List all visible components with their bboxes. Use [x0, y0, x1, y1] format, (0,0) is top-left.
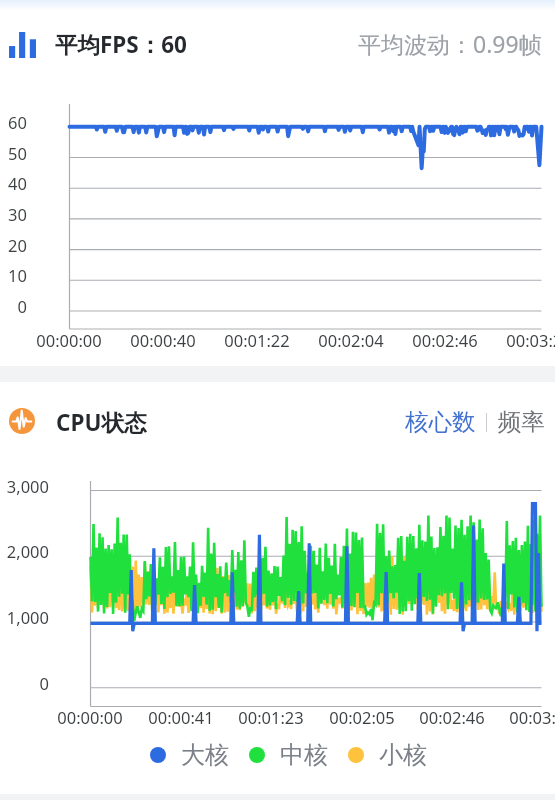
- staticText: 40: [0, 172, 27, 194]
- staticText: 00:03:28: [487, 706, 555, 728]
- staticText: 20: [0, 234, 27, 256]
- staticText: 核心数: [405, 407, 476, 437]
- staticText: 00:00:00: [35, 706, 145, 728]
- button[interactable]: 频率: [487, 401, 546, 443]
- staticText: 2,000: [0, 540, 49, 562]
- staticText: 10: [0, 264, 27, 286]
- staticText: 0: [0, 295, 27, 317]
- staticText: 平均FPS：60: [55, 29, 187, 60]
- staticText: 60: [0, 111, 27, 133]
- staticText: 大核: [181, 740, 229, 770]
- staticText: 00:01:22: [202, 329, 312, 351]
- button[interactable]: 大核: [150, 740, 229, 770]
- staticText: 00:02:46: [397, 706, 507, 728]
- staticText: 中核: [280, 740, 328, 770]
- staticText: 平均波动：0.99帧: [358, 28, 542, 59]
- staticText: 00:00:41: [126, 706, 236, 728]
- staticText: 50: [0, 142, 27, 164]
- staticText: 0: [0, 672, 49, 694]
- staticText: 小核: [379, 740, 427, 770]
- staticText: 00:02:04: [296, 329, 406, 351]
- staticText: 频率: [498, 407, 545, 437]
- staticText: 00:01:23: [216, 706, 326, 728]
- button[interactable]: 小核: [348, 740, 427, 770]
- staticText: 00:03:28: [484, 329, 555, 351]
- staticText: 00:00:00: [14, 329, 124, 351]
- button[interactable]: 中核: [249, 740, 328, 770]
- staticText: 00:02:46: [390, 329, 500, 351]
- staticText: 1,000: [0, 606, 49, 628]
- button[interactable]: 核心数: [399, 401, 486, 443]
- staticText: 3,000: [0, 475, 49, 497]
- staticText: CPU状态: [56, 407, 147, 438]
- staticText: 00:00:40: [108, 329, 218, 351]
- other: CPU status: [9, 408, 35, 434]
- staticText: 00:02:05: [307, 706, 417, 728]
- staticText: 30: [0, 203, 27, 225]
- other: FPS chart: [9, 32, 36, 58]
